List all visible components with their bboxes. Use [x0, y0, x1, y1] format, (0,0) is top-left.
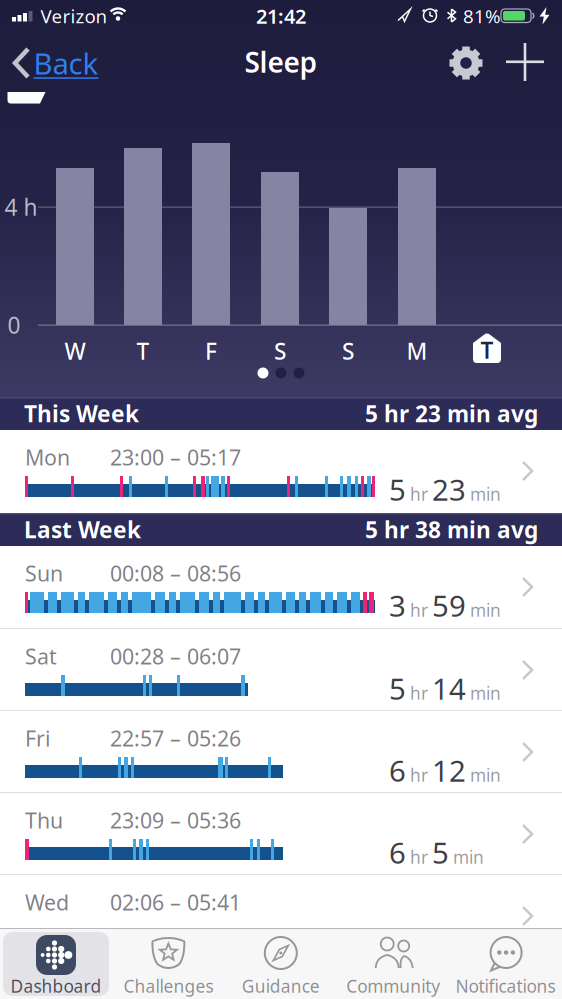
staticText: Wed: [25, 888, 69, 916]
staticText: T: [480, 335, 493, 365]
staticText: 00:28 – 06:07: [110, 642, 241, 670]
staticText: 3: [389, 586, 406, 625]
button[interactable]: Mon: [0, 430, 562, 513]
staticText: Thu: [25, 806, 63, 834]
staticText: 0: [7, 310, 20, 340]
staticText: hr: [410, 483, 428, 506]
button[interactable]: Dashboard: [0, 928, 112, 999]
button[interactable]: Challenges: [112, 928, 224, 999]
staticText: 5: [389, 669, 406, 708]
staticText: Sleep: [244, 43, 317, 81]
staticText: 81%: [463, 4, 501, 28]
staticText: min: [470, 764, 501, 787]
staticText: 3: [389, 921, 406, 960]
staticText: T: [136, 336, 149, 366]
staticText: 23:00 – 05:17: [110, 443, 241, 471]
button[interactable]: [444, 41, 488, 85]
staticText: min: [470, 934, 501, 957]
button[interactable]: Community: [337, 928, 449, 999]
staticText: Challenges: [123, 974, 213, 997]
staticText: Guidance: [242, 974, 320, 997]
button[interactable]: Wed: [0, 875, 562, 956]
staticText: Last Week: [24, 514, 141, 544]
staticText: Community: [346, 974, 440, 997]
staticText: hr: [410, 682, 428, 705]
staticText: 23: [432, 470, 466, 509]
button[interactable]: [503, 40, 547, 84]
staticText: Sun: [25, 559, 63, 587]
staticText: 5 hr 23 min avg: [365, 398, 538, 428]
staticText: 6: [389, 833, 406, 872]
staticText: 12: [432, 751, 466, 790]
button[interactable]: Guidance: [225, 928, 337, 999]
staticText: Dashboard: [10, 974, 101, 997]
staticText: 23:09 – 05:36: [110, 806, 241, 834]
button[interactable]: Sat: [0, 629, 562, 710]
staticText: 00:08 – 08:56: [110, 559, 241, 587]
button[interactable]: Thu: [0, 793, 562, 874]
staticText: W: [64, 336, 85, 366]
staticText: hr: [410, 846, 428, 869]
staticText: 22:57 – 05:26: [110, 724, 241, 752]
staticText: hr: [410, 599, 428, 622]
button[interactable]: Sun: [0, 546, 562, 628]
staticText: 4 h: [4, 192, 37, 222]
staticText: 59: [432, 586, 466, 625]
staticText: 6: [389, 751, 406, 790]
staticText: 14: [432, 669, 466, 708]
staticText: Back: [33, 43, 98, 82]
staticText: F: [205, 336, 217, 366]
button[interactable]: T: [473, 333, 501, 363]
staticText: Verizon: [40, 4, 107, 28]
staticText: 21:42: [256, 3, 306, 29]
staticText: Mon: [25, 443, 70, 471]
staticText: min: [470, 483, 501, 506]
staticText: min: [453, 846, 484, 869]
staticText: S: [342, 336, 354, 366]
staticText: 5: [389, 470, 406, 509]
staticText: 35: [432, 921, 466, 960]
button[interactable]: Back: [0, 0, 100, 90]
button[interactable]: Notifications: [450, 928, 562, 999]
staticText: min: [470, 682, 501, 705]
staticText: 5: [432, 833, 449, 872]
staticText: Notifications: [456, 974, 556, 997]
staticText: 02:06 – 05:41: [110, 888, 241, 916]
staticText: This Week: [24, 398, 139, 428]
button[interactable]: Fri: [0, 711, 562, 792]
staticText: M: [406, 336, 427, 366]
staticText: Sat: [25, 642, 57, 670]
staticText: min: [470, 599, 501, 622]
staticText: hr: [410, 764, 428, 787]
staticText: S: [274, 336, 286, 366]
staticText: Fri: [25, 724, 51, 752]
staticText: 5 hr 38 min avg: [365, 514, 538, 544]
